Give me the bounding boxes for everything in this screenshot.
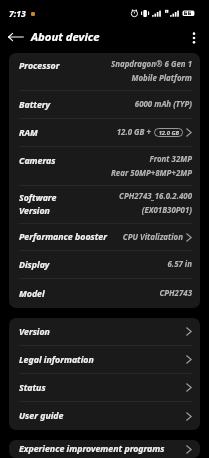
button[interactable]: Model [9,279,200,308]
staticText: CPU Vitalization [122,232,183,243]
button[interactable]: Display [9,251,200,278]
staticText: Display [19,259,50,271]
button[interactable]: Processor [9,53,200,90]
button[interactable]: User guide [9,402,200,430]
staticText: CPH2743_16.0.2.400 (EX01B30P01) [119,191,192,215]
staticText: 6000 mAh (TYP) [134,99,192,110]
button[interactable]: More options [184,26,204,46]
staticText: 12.0 GB + [116,127,151,138]
staticText: 12.0 GB [158,129,179,137]
staticText: Legal information [19,354,94,366]
staticText: About device [31,29,100,44]
button[interactable]: Version [9,318,200,345]
staticText: 7:13 [9,8,26,20]
button[interactable]: Status [9,374,200,401]
staticText: RAM [19,127,38,139]
staticText: Cameras [19,155,56,167]
staticText: Front 32MP Rear 50MP+8MP+2MP [110,154,192,178]
button[interactable]: Performance booster [9,224,200,250]
staticText: Battery [19,99,51,111]
staticText: Snapdragon® 6 Gen 1 Mobile Platform [111,59,192,83]
button[interactable]: Experience improvement programs [9,440,200,458]
staticText: CPH2743 [159,288,192,299]
staticText: Experience improvement programs [19,443,165,455]
button[interactable]: Software Version [9,186,200,223]
button[interactable]: Legal information [9,346,200,373]
staticText: Processor [19,60,60,72]
staticText: Software Version [19,192,57,216]
button[interactable]: Back [4,25,27,48]
button[interactable]: Battery [9,91,200,118]
staticText: Performance booster [19,231,107,243]
staticText: Version [19,326,50,338]
button[interactable]: Cameras [9,147,200,185]
staticText: Model [19,288,45,300]
staticText: Status [19,382,46,394]
staticText: 6.57 in [167,259,192,270]
button[interactable]: RAM [9,119,200,146]
staticText: User guide [19,410,64,422]
